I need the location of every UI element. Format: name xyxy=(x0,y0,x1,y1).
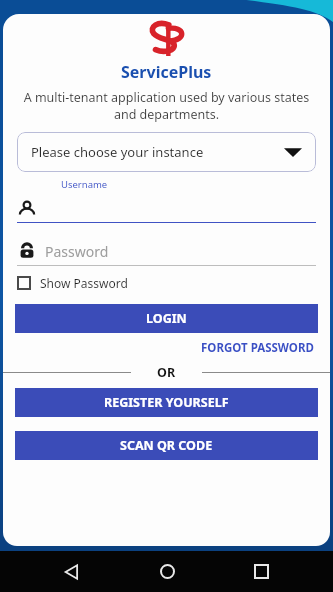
staticText: OR xyxy=(157,364,176,380)
button[interactable]: FORGOT PASSWORD xyxy=(199,338,316,358)
staticText: Show Password xyxy=(40,275,128,291)
button[interactable] xyxy=(17,195,316,223)
staticText: Username xyxy=(61,178,108,191)
button[interactable]: SCAN QR CODE xyxy=(15,431,318,460)
button[interactable]: Please choose your instance xyxy=(17,132,316,172)
button[interactable]: LOGIN xyxy=(15,304,318,333)
staticText: FORGOT PASSWORD xyxy=(201,340,314,356)
staticText: A multi-tenant application used by vario… xyxy=(13,89,320,122)
staticText: REGISTER YOURSELF xyxy=(104,394,229,411)
staticText: Please choose your instance xyxy=(31,143,284,161)
button[interactable]: Recent apps xyxy=(239,551,283,592)
staticText: Password xyxy=(45,242,109,261)
button[interactable]: Home xyxy=(145,551,189,592)
staticText: SCAN QR CODE xyxy=(120,437,213,454)
staticText: ServicePlus xyxy=(121,61,212,83)
button[interactable]: Back xyxy=(50,551,94,592)
button[interactable]: REGISTER YOURSELF xyxy=(15,388,318,417)
button[interactable]: Show Password xyxy=(17,275,316,291)
staticText: LOGIN xyxy=(146,310,187,327)
button[interactable]: Password xyxy=(17,237,316,266)
